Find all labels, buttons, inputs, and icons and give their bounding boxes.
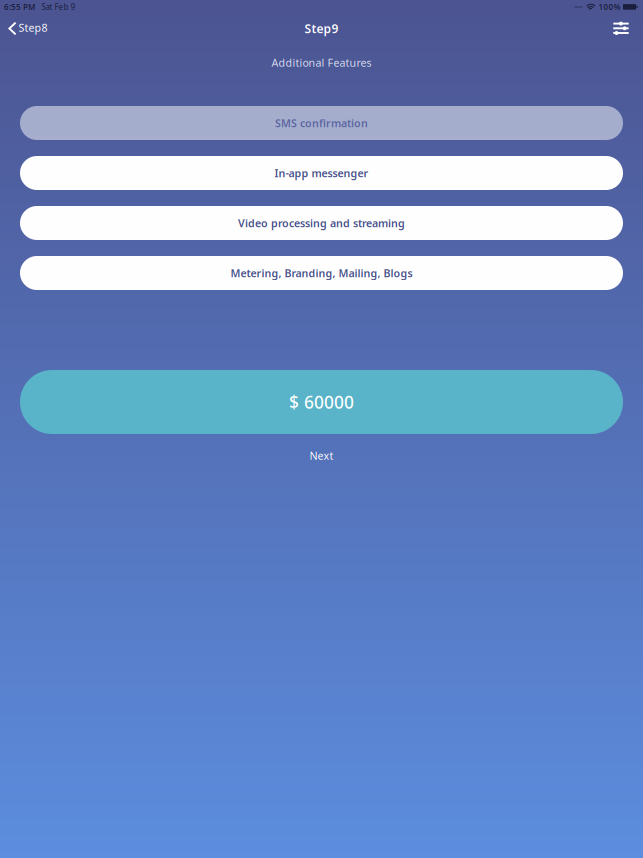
staticText: Next (309, 448, 333, 463)
staticText: Additional Features (271, 55, 371, 70)
staticText: Video processing and streaming (238, 216, 405, 230)
button[interactable]: Step8 (0, 14, 58, 43)
button[interactable]: Filter (604, 14, 643, 43)
button[interactable]: Video processing and streaming (20, 206, 623, 240)
staticText: Metering, Branding, Mailing, Blogs (230, 266, 412, 280)
button[interactable]: $ 60000 (0, 370, 643, 434)
staticText: In-app messenger (274, 166, 368, 180)
button[interactable]: Next (293, 448, 349, 462)
staticText: SMS confirmation (275, 116, 368, 130)
staticText: $ 60000 (289, 390, 354, 413)
staticText: Step8 (19, 20, 48, 35)
staticText: 100% (598, 2, 620, 12)
button[interactable]: SMS confirmation (20, 106, 623, 140)
staticText: Sat Feb 9 (41, 2, 75, 12)
button[interactable]: Metering, Branding, Mailing, Blogs (20, 256, 623, 290)
button[interactable]: In-app messenger (20, 156, 623, 190)
staticText: 6:55 PM (4, 2, 35, 12)
staticText: Step9 (304, 20, 338, 36)
